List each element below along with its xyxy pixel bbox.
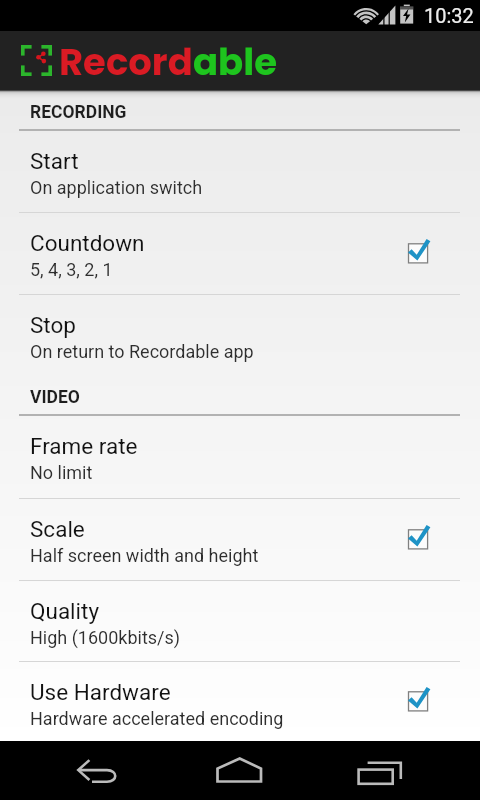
staticText: Record	[59, 36, 193, 88]
staticText: Frame rate	[30, 433, 138, 459]
staticText: High (1600kbits/s)	[30, 627, 181, 648]
button[interactable]: Start	[0, 130, 480, 212]
staticText: 5, 4, 3, 2, 1	[30, 259, 113, 280]
staticText: Start	[30, 148, 79, 174]
button[interactable]: Use Hardware	[0, 661, 480, 741]
staticText: Hardware accelerated encoding	[30, 708, 284, 729]
button[interactable]: Stop	[0, 294, 480, 374]
button[interactable]: Home	[170, 741, 310, 800]
button[interactable]: Frame rate	[0, 415, 480, 498]
staticText: Quality	[30, 598, 100, 624]
button[interactable]: Quality	[0, 580, 480, 661]
staticText: RECORDING	[30, 102, 127, 123]
staticText: Half screen width and height	[30, 545, 259, 566]
button[interactable]: Countdown	[0, 212, 480, 294]
staticText: Scale	[30, 516, 85, 542]
staticText: VIDEO	[30, 387, 80, 408]
staticText: Countdown	[30, 230, 145, 256]
button[interactable]: Back	[30, 741, 170, 800]
staticText: able	[193, 36, 277, 88]
staticText: On return to Recordable app	[30, 341, 254, 362]
staticText: On application switch	[30, 177, 203, 198]
button[interactable]: Scale	[0, 498, 480, 580]
staticText: 10:32	[424, 4, 474, 27]
staticText: Use Hardware	[30, 679, 171, 705]
staticText: No limit	[30, 462, 93, 483]
button[interactable]: Recent apps	[310, 741, 450, 800]
staticText: Stop	[30, 312, 76, 338]
